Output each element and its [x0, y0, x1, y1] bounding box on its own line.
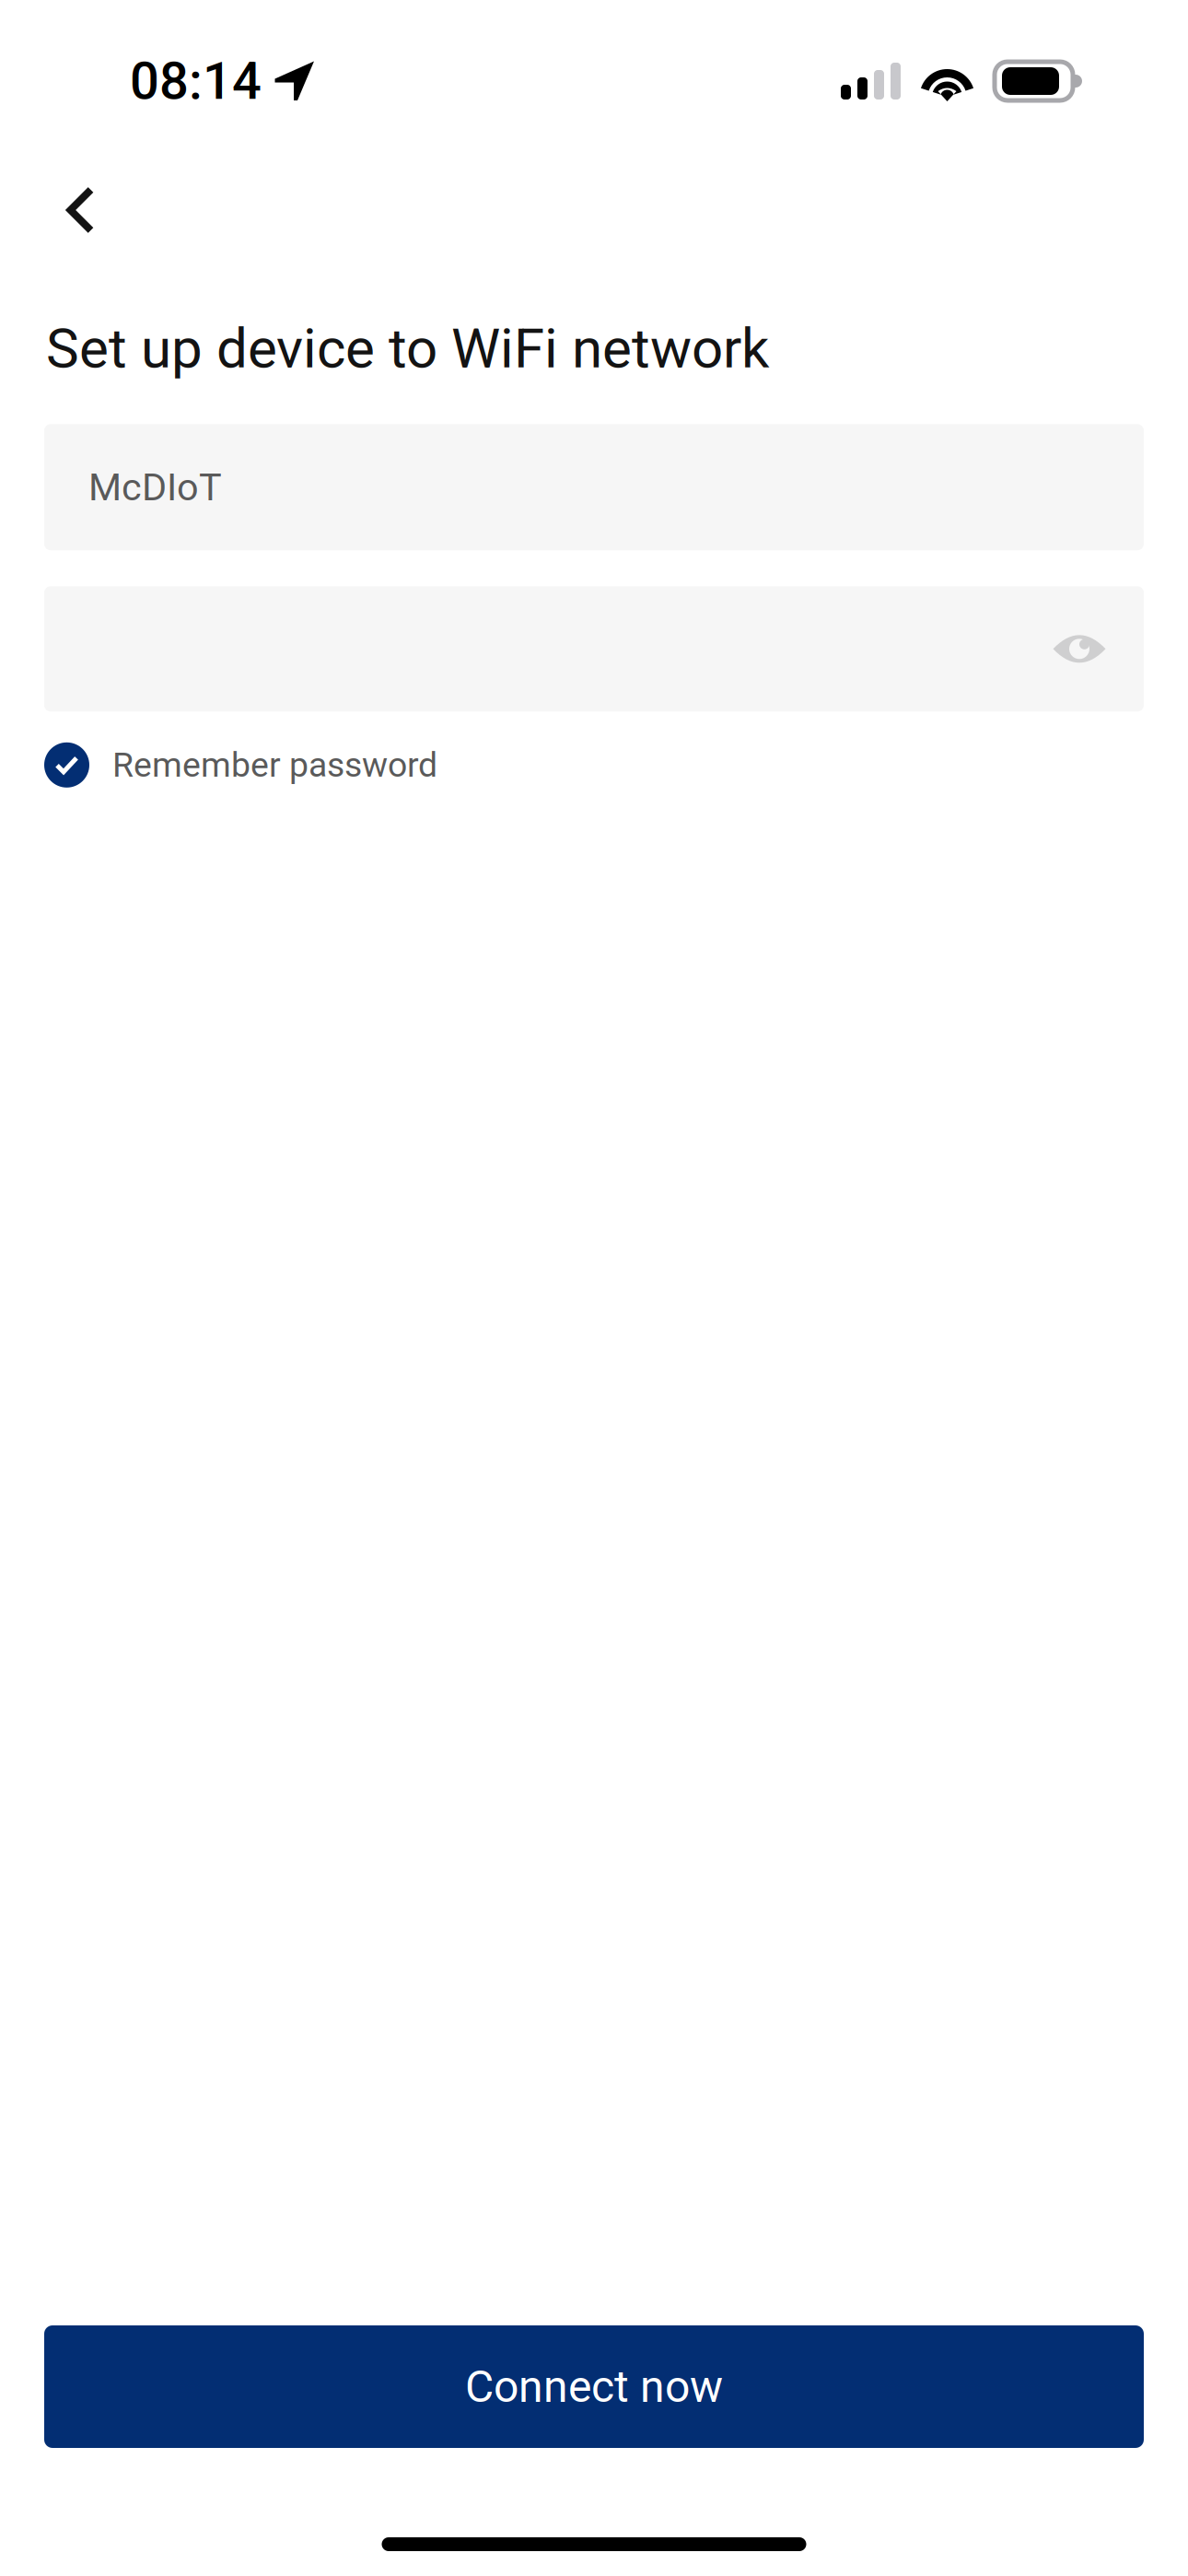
staticText: Set up device to WiFi network [46, 316, 769, 381]
staticText: Connect now [465, 2361, 723, 2413]
staticText: McDIoT [88, 465, 222, 509]
button[interactable]: Back [38, 167, 124, 253]
staticText: 08:14 [130, 51, 262, 111]
button[interactable]: McDIoT [44, 424, 1144, 550]
button[interactable]: Connect now [44, 2325, 1144, 2448]
button[interactable]: Remember password [0, 735, 456, 795]
button[interactable]: Show password [1031, 601, 1127, 697]
staticText: Remember password [112, 745, 437, 785]
